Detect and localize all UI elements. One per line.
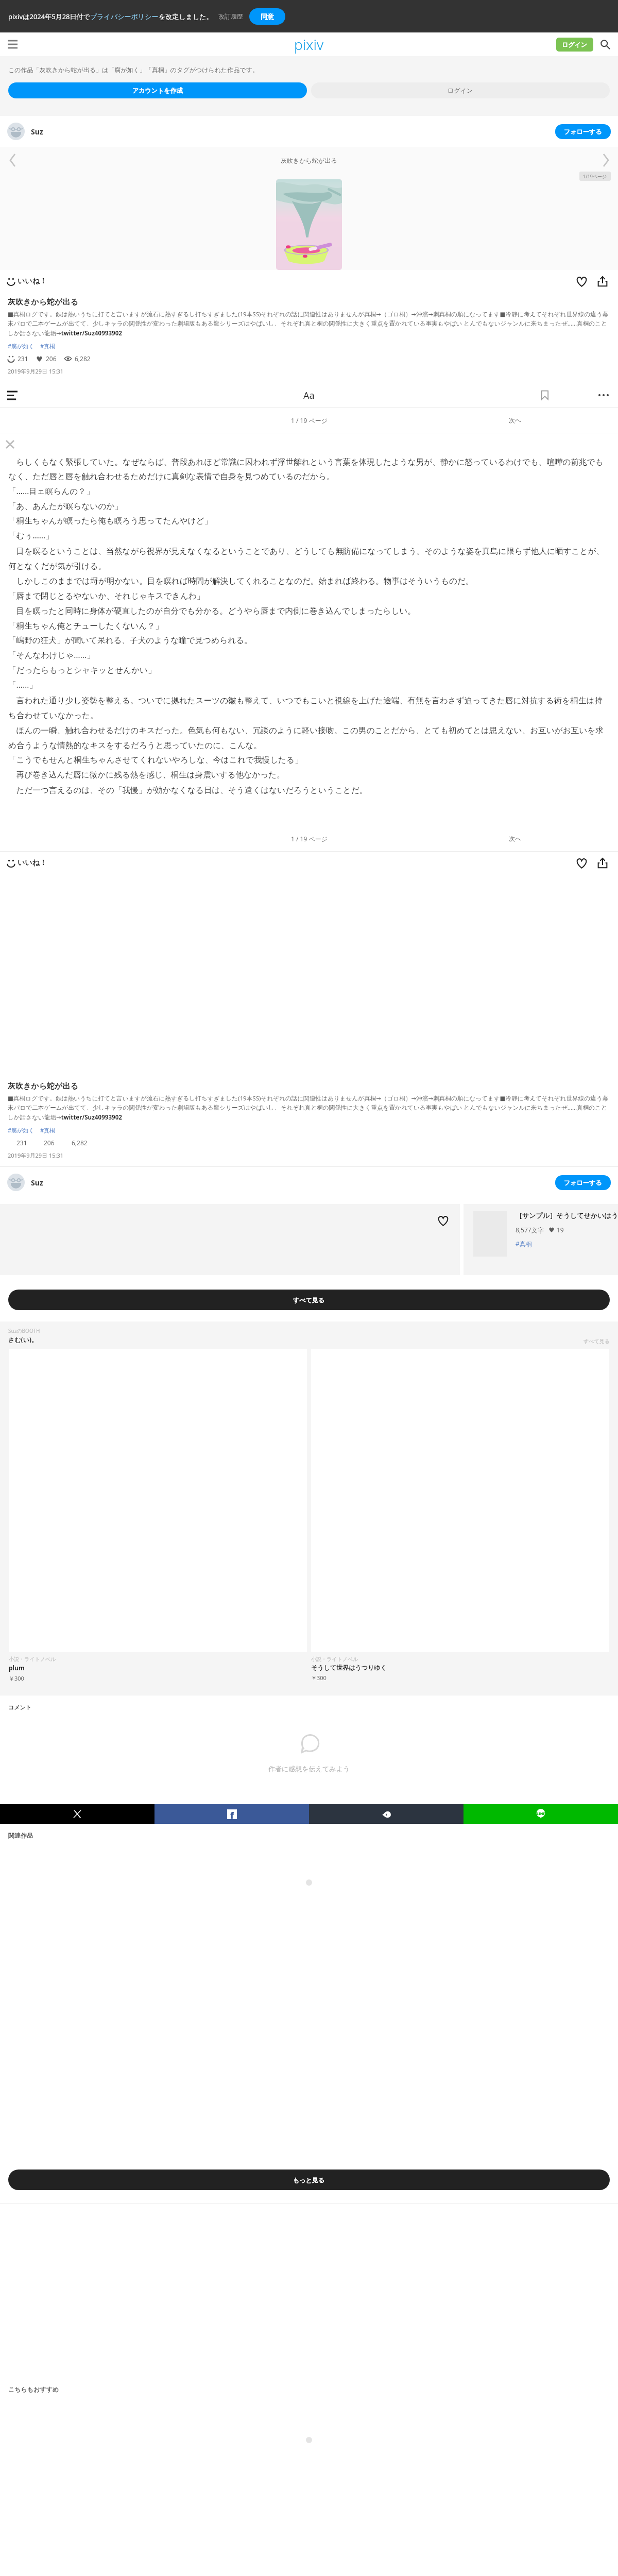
staticText: 小説・ライトノベル xyxy=(9,1656,56,1663)
staticText: を改定しました。 xyxy=(159,12,213,21)
staticText: 231 xyxy=(18,354,28,363)
staticText: SuzのBOOTH xyxy=(8,1327,40,1334)
button[interactable]: ログイン xyxy=(556,38,593,52)
button[interactable]: Suz xyxy=(31,127,43,137)
button[interactable]: #腐が如く xyxy=(8,342,35,350)
staticText: 2019年9月29日 15:31 xyxy=(8,367,64,375)
staticText: 灰吹きから蛇が出る xyxy=(8,1081,78,1091)
staticText: ■真桐ログです。鉄は熱いうちに打てと言いますが流石に熱すぎるし打ちすぎました(1… xyxy=(8,1094,611,1121)
staticText: pixivは2024年5月28日付で xyxy=(8,12,90,21)
button[interactable]: Share xyxy=(594,273,611,290)
button[interactable]: Menu xyxy=(3,35,22,54)
staticText: コメント xyxy=(8,1704,32,1711)
button[interactable]: Like xyxy=(573,273,590,290)
button[interactable]: フォローする xyxy=(555,124,611,139)
staticText: ログイン xyxy=(562,41,588,48)
button[interactable]: プライバシーポリシー xyxy=(90,12,159,21)
staticText: 231 xyxy=(16,1139,27,1147)
staticText: ［サンプル］そうしてせかいはうつりゆく xyxy=(516,1211,618,1219)
button[interactable]: Previous work xyxy=(3,151,22,170)
button[interactable]: Share on X xyxy=(0,1804,154,1824)
staticText: フォローする xyxy=(564,1179,602,1187)
button[interactable]: Like xyxy=(573,855,590,871)
button[interactable]: More options xyxy=(594,386,613,404)
staticText: f xyxy=(230,1809,234,1819)
button[interactable]: #腐が如く xyxy=(8,1126,35,1134)
button[interactable]: Next work xyxy=(596,151,615,170)
staticText: 6,282 xyxy=(72,1139,88,1147)
staticText: いいね！ xyxy=(18,858,47,868)
staticText: pixiv xyxy=(294,35,324,54)
button[interactable]: Share xyxy=(594,855,611,871)
staticText: 206 xyxy=(44,1139,55,1147)
button[interactable]: Share on Facebook xyxy=(154,1804,309,1824)
button[interactable]: いいね！ xyxy=(7,277,47,286)
staticText: 灰吹きから蛇が出る xyxy=(281,157,337,164)
button[interactable]: 次へ xyxy=(509,416,522,424)
staticText: 1 / 19 ページ xyxy=(291,835,328,843)
staticText: 作者に感想を伝えてみよう xyxy=(268,1765,350,1773)
button[interactable] xyxy=(7,1174,25,1191)
staticText: ログイン xyxy=(448,87,473,94)
staticText: ￥300 xyxy=(311,1674,327,1682)
button[interactable]: Share on LINE xyxy=(463,1804,618,1824)
button[interactable]: #真桐 xyxy=(40,342,56,350)
staticText: フォローする xyxy=(564,128,602,135)
button[interactable]: Close xyxy=(3,437,16,451)
button[interactable]: 次へ xyxy=(509,835,522,842)
staticText: アカウントを作成 xyxy=(132,87,183,94)
staticText: 1/19ページ xyxy=(583,173,607,179)
button[interactable]: すべて見る xyxy=(583,1338,610,1345)
button[interactable]: 同意 xyxy=(249,8,285,25)
staticText: もっと見る xyxy=(293,2176,325,2184)
button[interactable]: Search xyxy=(596,36,614,53)
button[interactable]: Suz xyxy=(31,1178,43,1188)
button[interactable]: 改訂履歴 xyxy=(218,12,243,20)
staticText: LINE xyxy=(537,1811,545,1817)
staticText: 灰吹きから蛇が出る xyxy=(8,297,78,307)
staticText: #真桐 xyxy=(516,1240,532,1248)
staticText: こちらもおすすめ xyxy=(8,2385,59,2393)
staticText: 関連作品 xyxy=(8,1832,33,1839)
button[interactable] xyxy=(276,179,342,270)
staticText: すべて見る xyxy=(293,1296,325,1304)
button[interactable]: 小説・ライトノベル xyxy=(9,1349,307,1696)
staticText: 2019年9月29日 15:31 xyxy=(8,1151,64,1159)
button[interactable]: #真桐 xyxy=(40,1126,56,1134)
button[interactable]: Bookmark xyxy=(536,386,554,404)
button[interactable]: ログイン xyxy=(311,82,610,98)
staticText: Aa xyxy=(303,389,315,402)
button[interactable]: Aa xyxy=(299,385,319,406)
button[interactable]: 小説・ライトノベル xyxy=(311,1349,609,1696)
button[interactable]: Share on Hatena xyxy=(309,1804,463,1824)
staticText: 6,282 xyxy=(75,354,91,363)
staticText: 206 xyxy=(46,354,57,363)
staticText: さむ(い)。 xyxy=(8,1335,38,1344)
staticText: ￥300 xyxy=(9,1674,24,1682)
staticText: そうして世界はうつりゆく xyxy=(311,1664,387,1671)
button[interactable] xyxy=(7,123,25,140)
staticText: らしくもなく緊張していた。なぜならば、普段あれほど常識に囚われず浮世離れという言… xyxy=(8,456,611,795)
staticText: ■真桐ログです。鉄は熱いうちに打てと言いますが流石に熱すぎるし打ちすぎました(1… xyxy=(8,310,611,337)
button[interactable]: フォローする xyxy=(555,1175,611,1190)
staticText: この作品「灰吹きから蛇が出る」は「腐が如く」「真桐」のタグがつけられた作品です。 xyxy=(8,66,259,74)
staticText: 1 / 19 ページ xyxy=(291,416,328,425)
staticText: 同意 xyxy=(261,12,274,21)
button[interactable]: Table of contents xyxy=(3,386,22,404)
button[interactable]: もっと見る xyxy=(8,2170,610,2190)
staticText: plum xyxy=(9,1664,25,1672)
button[interactable]: いいね！ xyxy=(7,858,47,868)
staticText: いいね！ xyxy=(18,277,47,286)
button[interactable]: すべて見る xyxy=(8,1290,610,1310)
button[interactable]: アカウントを作成 xyxy=(8,82,307,98)
button[interactable] xyxy=(0,1204,460,1275)
staticText: 19 xyxy=(557,1226,564,1234)
staticText: 8,577文字 xyxy=(516,1226,544,1234)
button[interactable]: ［サンプル］そうしてせかいはうつりゆく xyxy=(463,1204,618,1275)
staticText: 小説・ライトノベル xyxy=(311,1656,358,1663)
